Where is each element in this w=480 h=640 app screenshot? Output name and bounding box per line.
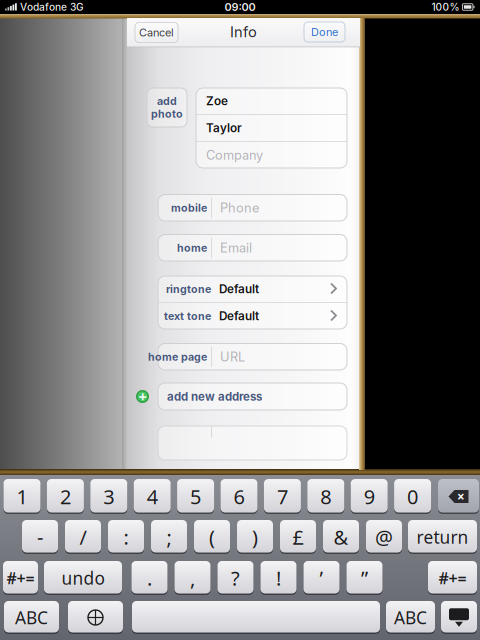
staticText: Vodafone 3G <box>20 1 84 13</box>
staticText: Company <box>206 147 263 163</box>
staticText: , <box>190 565 195 591</box>
staticText: ; <box>166 524 171 550</box>
staticText: . <box>147 565 152 591</box>
button[interactable]: / <box>65 520 101 554</box>
button[interactable]: home <box>158 234 347 261</box>
button[interactable]: ringtone <box>158 276 347 302</box>
staticText: Phone <box>220 200 259 215</box>
button[interactable]: 8 <box>307 479 344 514</box>
button[interactable]: return <box>408 520 477 554</box>
button[interactable]: home page <box>158 343 347 370</box>
staticText: photo <box>151 107 183 120</box>
staticText: undo <box>61 566 104 589</box>
staticText: 09:00 <box>224 0 255 14</box>
staticText: ’ <box>319 565 323 591</box>
button[interactable]: £ <box>280 520 316 554</box>
staticText: £ <box>292 524 303 550</box>
button[interactable]: ABC <box>4 601 59 634</box>
button[interactable]: 6 <box>220 479 257 514</box>
staticText: text tone <box>164 309 211 322</box>
staticText: ) <box>252 524 258 550</box>
staticText: 0 <box>407 483 418 510</box>
button[interactable]: Next keyboard <box>68 601 123 634</box>
button[interactable]: undo <box>44 561 122 595</box>
button[interactable]: ) <box>237 520 273 554</box>
button[interactable]: #+= <box>3 561 38 595</box>
staticText: add <box>157 95 177 107</box>
staticText: return <box>416 525 468 548</box>
button[interactable]: ; <box>151 520 187 554</box>
button[interactable]: mobile <box>158 194 347 221</box>
staticText: @ <box>375 524 393 550</box>
staticText: Done <box>311 25 338 39</box>
button[interactable]: + <box>136 387 149 406</box>
staticText: ? <box>231 565 240 591</box>
staticText: 2 <box>60 483 71 510</box>
staticText: #+= <box>438 567 466 589</box>
staticText: 4 <box>147 483 158 510</box>
staticText: Taylor <box>206 121 242 135</box>
staticText: ( <box>209 524 215 550</box>
button[interactable]: ! <box>260 561 296 595</box>
button[interactable]: #+= <box>428 561 477 595</box>
button[interactable]: text tone <box>158 303 347 329</box>
button[interactable]: @ <box>366 520 402 554</box>
button[interactable]: : <box>108 520 144 554</box>
staticText: ! <box>276 565 281 591</box>
staticText: Default <box>219 309 259 323</box>
button[interactable]: Cancel <box>135 22 178 42</box>
button[interactable]: 5 <box>177 479 214 514</box>
button[interactable]: ? <box>217 561 253 595</box>
button[interactable]: 0 <box>394 479 431 514</box>
button[interactable]: 1 <box>3 479 40 514</box>
staticText: 6 <box>233 483 244 510</box>
staticText: #+= <box>6 567 34 589</box>
staticText: ABC <box>15 606 48 629</box>
staticText: 8 <box>320 483 331 510</box>
staticText: ” <box>361 565 368 591</box>
staticText: 7 <box>277 483 288 510</box>
staticText: add new address <box>167 390 262 403</box>
staticText: home page <box>148 350 207 363</box>
button[interactable]: ( <box>194 520 230 554</box>
staticText: ringtone <box>166 282 211 295</box>
button[interactable]: 3 <box>90 479 127 514</box>
staticText: Info <box>230 23 257 41</box>
staticText: : <box>123 524 128 550</box>
staticText: 1 <box>16 483 27 510</box>
staticText: - <box>37 524 43 550</box>
staticText: 3 <box>103 483 114 510</box>
staticText: home <box>177 241 207 254</box>
staticText: Cancel <box>139 26 174 39</box>
staticText: URL <box>220 349 245 364</box>
button[interactable]: ” <box>346 561 382 595</box>
staticText: Zoe <box>206 94 228 108</box>
button[interactable]: , <box>174 561 210 595</box>
button[interactable]: ’ <box>303 561 339 595</box>
button[interactable]: 2 <box>47 479 84 514</box>
staticText: × <box>457 488 465 505</box>
staticText: & <box>333 524 348 550</box>
button[interactable]: 4 <box>134 479 171 514</box>
button[interactable]: Delete <box>438 479 479 514</box>
button[interactable]: Hide keyboard <box>441 601 477 634</box>
button[interactable]: 7 <box>264 479 301 514</box>
button[interactable]: & <box>323 520 359 554</box>
staticText: Email <box>220 240 252 255</box>
button[interactable]: add <box>147 88 187 127</box>
button[interactable]: . <box>131 561 167 595</box>
staticText: 9 <box>364 483 375 510</box>
staticText: / <box>79 524 86 550</box>
button[interactable]: Done <box>304 22 345 42</box>
staticText: + <box>138 387 146 406</box>
staticText: mobile <box>171 201 207 214</box>
button[interactable]: space <box>132 601 380 634</box>
button[interactable]: add new address <box>158 383 347 410</box>
staticText: 100% <box>431 1 459 13</box>
button[interactable]: ABC <box>386 601 435 634</box>
staticText: ABC <box>394 606 427 629</box>
staticText: Default <box>219 282 259 296</box>
button[interactable]: - <box>22 520 58 554</box>
button[interactable]: 9 <box>351 479 388 514</box>
staticText: 5 <box>190 483 201 510</box>
